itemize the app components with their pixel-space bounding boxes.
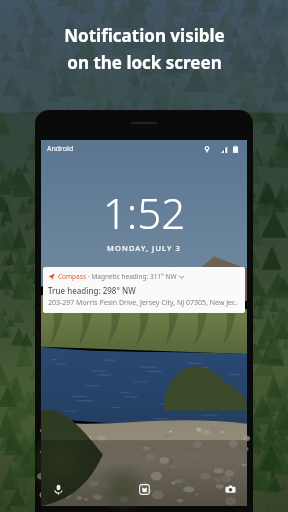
staticText: Android [47, 144, 74, 154]
staticText: 1:52 [103, 184, 186, 241]
staticText: 203-297 Morris Pesin Drive, Jersey City,… [48, 298, 238, 308]
button[interactable]: Voice assistant [49, 480, 67, 498]
staticText: MONDAY, JULY 3 [107, 243, 181, 253]
staticText: Notification visible [64, 24, 225, 47]
button[interactable]: Locked [135, 480, 153, 498]
staticText: on the lock screen [67, 51, 222, 74]
staticText: Compass [58, 272, 86, 281]
button[interactable]: Compass [43, 267, 245, 313]
staticText: True heading: 298° NW [48, 285, 136, 296]
button[interactable]: Camera [221, 480, 239, 498]
staticText: · Magnetic heading: 311° NW [88, 272, 177, 281]
